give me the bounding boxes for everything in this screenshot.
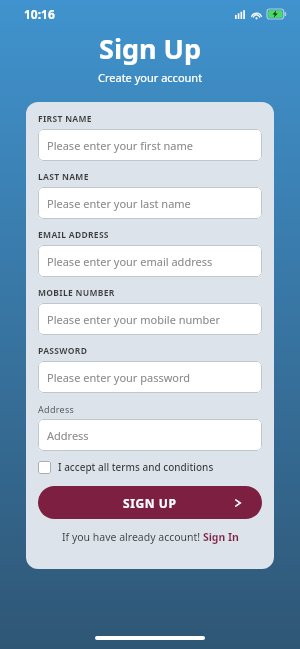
- staticText: PASSWORD: [38, 345, 88, 357]
- button[interactable]: If you have already account! Sign In: [38, 530, 262, 544]
- button[interactable]: Please enter your last name: [38, 187, 262, 219]
- staticText: Please enter your password: [47, 370, 191, 385]
- staticText: SIGN UP: [123, 495, 177, 511]
- button[interactable]: Please enter your first name: [38, 129, 262, 161]
- staticText: 10:16: [24, 6, 55, 22]
- staticText: Please enter your mobile number: [47, 312, 221, 327]
- staticText: FIRST NAME: [38, 113, 92, 125]
- button[interactable]: Please enter your mobile number: [38, 303, 262, 335]
- button[interactable]: Address: [38, 419, 262, 451]
- staticText: I accept all terms and conditions: [58, 460, 214, 474]
- button[interactable]: I accept all terms and conditions: [38, 460, 214, 474]
- staticText: If you have already account! Sign In: [62, 530, 239, 544]
- staticText: Sign Up: [99, 30, 202, 67]
- button[interactable]: SIGN UP: [38, 486, 262, 519]
- staticText: LAST NAME: [38, 171, 89, 183]
- staticText: Address: [38, 403, 75, 415]
- staticText: EMAIL ADDRESS: [38, 229, 109, 241]
- staticText: Please enter your first name: [47, 138, 193, 153]
- staticText: MOBILE NUMBER: [38, 287, 115, 299]
- staticText: Please enter your email address: [47, 254, 213, 269]
- button[interactable]: Please enter your email address: [38, 245, 262, 277]
- button[interactable]: Please enter your password: [38, 361, 262, 393]
- staticText: Address: [47, 428, 89, 443]
- staticText: Create your account: [98, 70, 203, 85]
- staticText: Please enter your last name: [47, 196, 191, 211]
